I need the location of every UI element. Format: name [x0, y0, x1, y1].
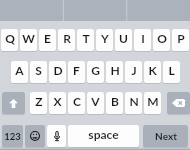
- staticText: P: [177, 31, 185, 45]
- button[interactable]: H: [106, 61, 123, 84]
- button[interactable]: L: [163, 61, 180, 84]
- button[interactable]: R: [58, 29, 75, 52]
- button[interactable]: D: [49, 61, 66, 84]
- staticText: Y: [101, 31, 109, 45]
- staticText: E: [44, 31, 51, 45]
- button[interactable]: 123: [2, 125, 23, 148]
- button[interactable]: T: [77, 29, 94, 52]
- staticText: X: [53, 94, 62, 108]
- button[interactable]: O: [153, 29, 170, 52]
- staticText: L: [168, 63, 175, 77]
- staticText: F: [73, 63, 80, 77]
- button[interactable]: Z: [30, 92, 47, 115]
- staticText: T: [82, 31, 90, 45]
- button[interactable]: X: [49, 92, 66, 115]
- staticText: 123: [4, 131, 21, 142]
- button[interactable]: M: [144, 92, 161, 115]
- staticText: D: [53, 63, 63, 77]
- button[interactable]: S: [30, 61, 47, 84]
- staticText: Next: [155, 130, 177, 142]
- staticText: S: [35, 63, 42, 77]
- staticText: V: [91, 94, 100, 108]
- button[interactable]: I: [134, 29, 151, 52]
- button[interactable]: Emoji keyboard: [25, 125, 45, 148]
- button[interactable]: G: [87, 61, 104, 84]
- staticText: W: [22, 31, 35, 45]
- staticText: N: [129, 94, 139, 108]
- staticText: R: [63, 31, 71, 45]
- staticText: K: [148, 63, 157, 77]
- button[interactable]: F: [68, 61, 85, 84]
- button[interactable]: W: [20, 29, 37, 52]
- button[interactable]: J: [125, 61, 142, 84]
- staticText: C: [73, 94, 81, 108]
- staticText: O: [157, 31, 167, 45]
- staticText: G: [91, 63, 100, 77]
- staticText: U: [119, 31, 128, 45]
- button[interactable]: A: [11, 61, 28, 84]
- button[interactable]: space: [68, 125, 139, 148]
- button[interactable]: Y: [96, 29, 113, 52]
- button[interactable]: U: [115, 29, 132, 52]
- staticText: A: [15, 63, 24, 77]
- staticText: I: [141, 31, 145, 45]
- staticText: M: [147, 94, 159, 108]
- button[interactable]: Next: [143, 125, 188, 148]
- button[interactable]: Voice input: [47, 125, 66, 148]
- button[interactable]: N: [125, 92, 142, 115]
- staticText: B: [111, 94, 119, 108]
- button[interactable]: Shift: [2, 92, 25, 115]
- button[interactable]: K: [144, 61, 161, 84]
- button[interactable]: Backspace: [167, 92, 190, 115]
- staticText: H: [110, 63, 120, 77]
- button[interactable]: B: [106, 92, 123, 115]
- staticText: space: [88, 127, 119, 141]
- button[interactable]: C: [68, 92, 85, 115]
- button[interactable]: P: [172, 29, 189, 52]
- staticText: Q: [5, 31, 15, 45]
- button[interactable]: Q: [1, 29, 18, 52]
- button[interactable]: V: [87, 92, 104, 115]
- staticText: J: [131, 63, 137, 77]
- button[interactable]: E: [39, 29, 56, 52]
- staticText: Z: [35, 94, 43, 108]
